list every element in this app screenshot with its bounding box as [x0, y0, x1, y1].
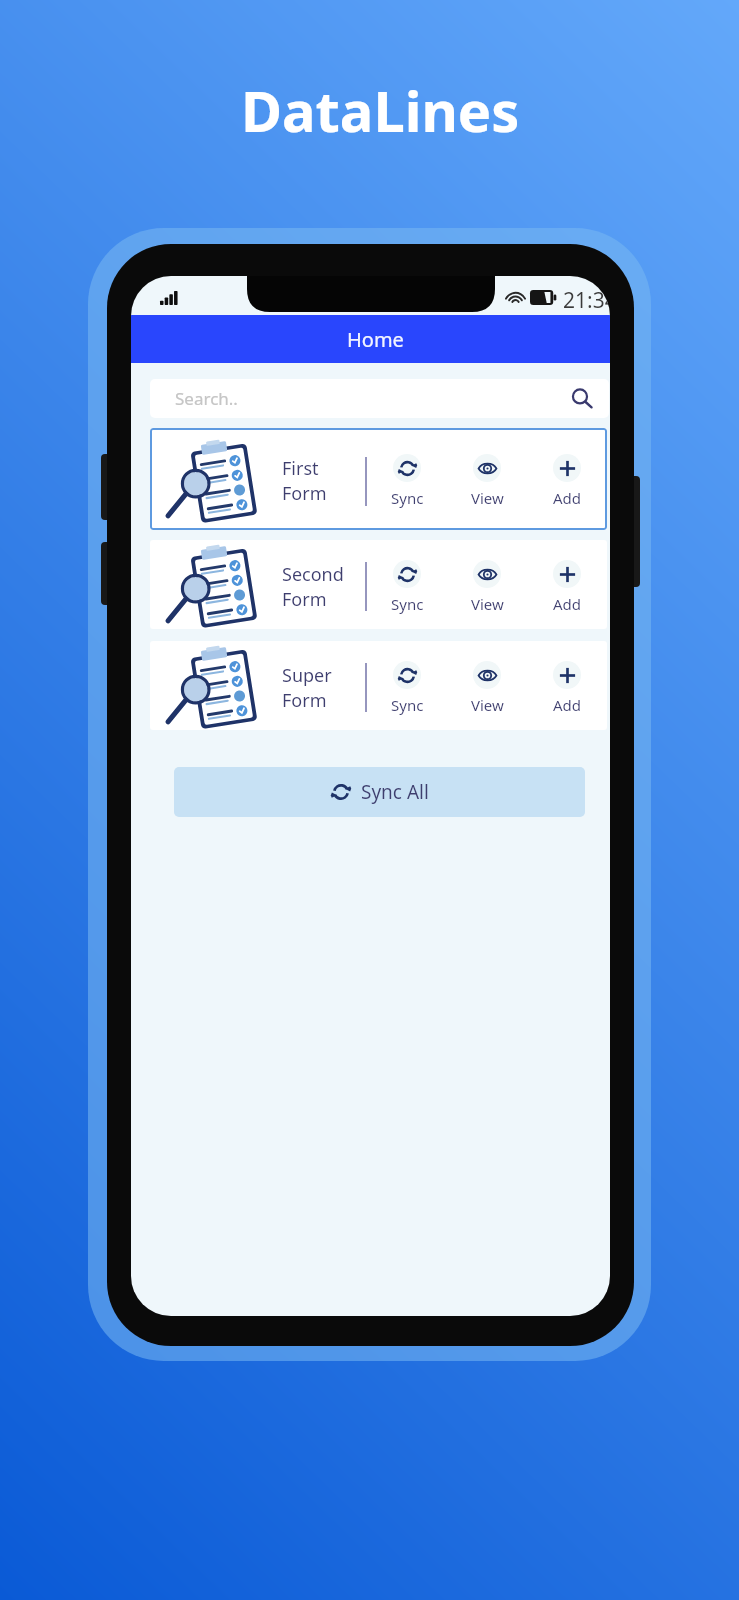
button[interactable]: Sync: [367, 556, 447, 618]
staticText: Second: [282, 562, 344, 587]
button[interactable]: Sync All: [174, 767, 585, 817]
other: Search: [572, 388, 593, 409]
button[interactable]: Home: [131, 315, 610, 363]
staticText: First: [282, 456, 319, 481]
button[interactable]: Add: [527, 657, 607, 719]
staticText: Form: [282, 688, 327, 713]
staticText: View: [471, 594, 504, 614]
button[interactable]: Super: [150, 641, 607, 730]
staticText: View: [471, 695, 504, 715]
staticText: Sync All: [361, 779, 429, 805]
staticText: Search..: [175, 387, 238, 410]
staticText: Sync: [391, 594, 424, 614]
button[interactable]: View: [447, 657, 527, 719]
staticText: 21:34: [563, 286, 610, 315]
button[interactable]: Sync: [367, 450, 447, 512]
staticText: Form: [282, 481, 327, 506]
staticText: Sync: [391, 488, 424, 508]
staticText: Add: [553, 594, 582, 614]
button[interactable]: First: [150, 428, 607, 530]
staticText: Form: [282, 587, 327, 612]
button[interactable]: View: [447, 556, 527, 618]
button[interactable]: Second: [150, 540, 607, 629]
button[interactable]: Sync: [367, 657, 447, 719]
staticText: Home: [347, 326, 404, 353]
button[interactable]: View: [447, 450, 527, 512]
staticText: DataLines: [241, 72, 520, 148]
button[interactable]: Add: [527, 556, 607, 618]
staticText: Add: [553, 695, 582, 715]
button[interactable]: Add: [527, 450, 607, 512]
staticText: Super: [282, 663, 332, 688]
button[interactable]: Search..: [150, 379, 609, 418]
staticText: View: [471, 488, 504, 508]
staticText: Sync: [391, 695, 424, 715]
staticText: Add: [553, 488, 582, 508]
